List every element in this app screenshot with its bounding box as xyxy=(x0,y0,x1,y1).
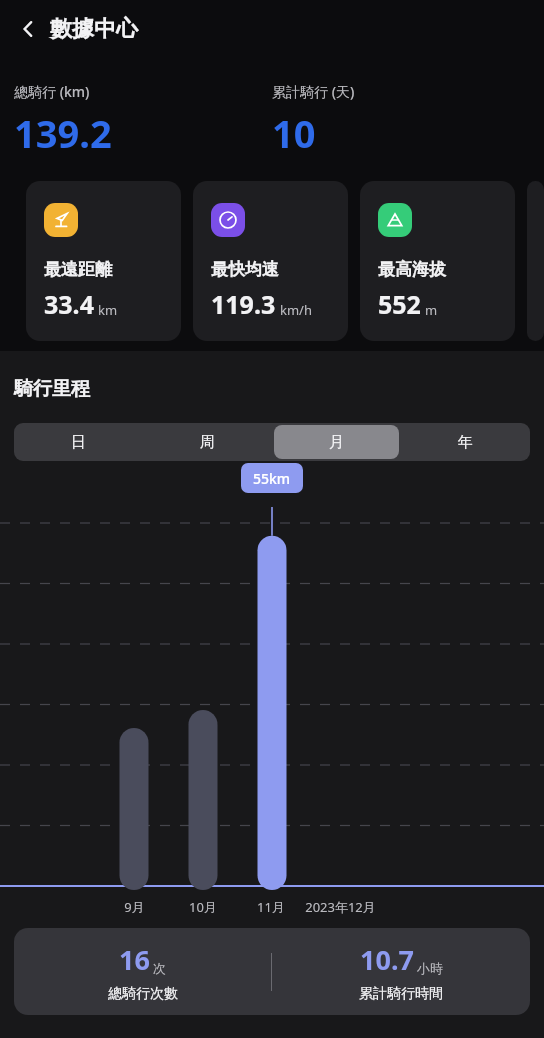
staticText: 最快均速 xyxy=(211,259,279,280)
staticText: 年 xyxy=(458,433,473,452)
staticText: 最高海拔 xyxy=(378,259,446,280)
staticText: 33.4 xyxy=(44,287,94,321)
staticText: 9月 xyxy=(124,898,145,916)
button[interactable]: 16 xyxy=(14,928,530,1015)
button[interactable]: 最高海拔 xyxy=(360,181,515,341)
button[interactable]: 日 xyxy=(16,425,141,459)
staticText: 16 xyxy=(119,941,150,978)
button[interactable]: 年 xyxy=(403,425,528,459)
staticText: 周 xyxy=(200,433,215,452)
staticText: 119.3 xyxy=(211,287,276,321)
staticText: 10 xyxy=(272,107,316,159)
staticText: 10月 xyxy=(189,898,217,916)
staticText: 139.2 xyxy=(14,107,112,159)
staticText: 月 xyxy=(329,433,344,452)
staticText: 騎行里程 xyxy=(14,377,90,401)
staticText: 累計騎行 (天) xyxy=(272,82,355,101)
staticText: 11月 xyxy=(257,898,285,916)
button[interactable]: Back xyxy=(6,7,50,51)
staticText: 次 xyxy=(153,960,166,976)
staticText: km xyxy=(98,301,118,319)
staticText: 總騎行次數 xyxy=(108,985,178,1003)
staticText: 總騎行 (km) xyxy=(14,82,90,101)
staticText: 累計騎行時間 xyxy=(359,985,443,1003)
button[interactable]: 周 xyxy=(145,425,270,459)
button[interactable]: 最遠距離 xyxy=(26,181,181,341)
staticText: km/h xyxy=(280,301,312,319)
staticText: 最遠距離 xyxy=(44,259,112,280)
staticText: 552 xyxy=(378,287,421,321)
button[interactable]: 最快均速 xyxy=(193,181,348,341)
staticText: 小時 xyxy=(417,960,443,976)
staticText: 2023年12月 xyxy=(305,898,376,916)
button[interactable]: 月 xyxy=(274,425,399,459)
staticText: 10.7 xyxy=(360,941,414,978)
staticText: 數據中心 xyxy=(50,15,138,43)
staticText: 55km xyxy=(253,469,291,488)
staticText: 日 xyxy=(71,433,86,452)
staticText: m xyxy=(425,301,438,319)
